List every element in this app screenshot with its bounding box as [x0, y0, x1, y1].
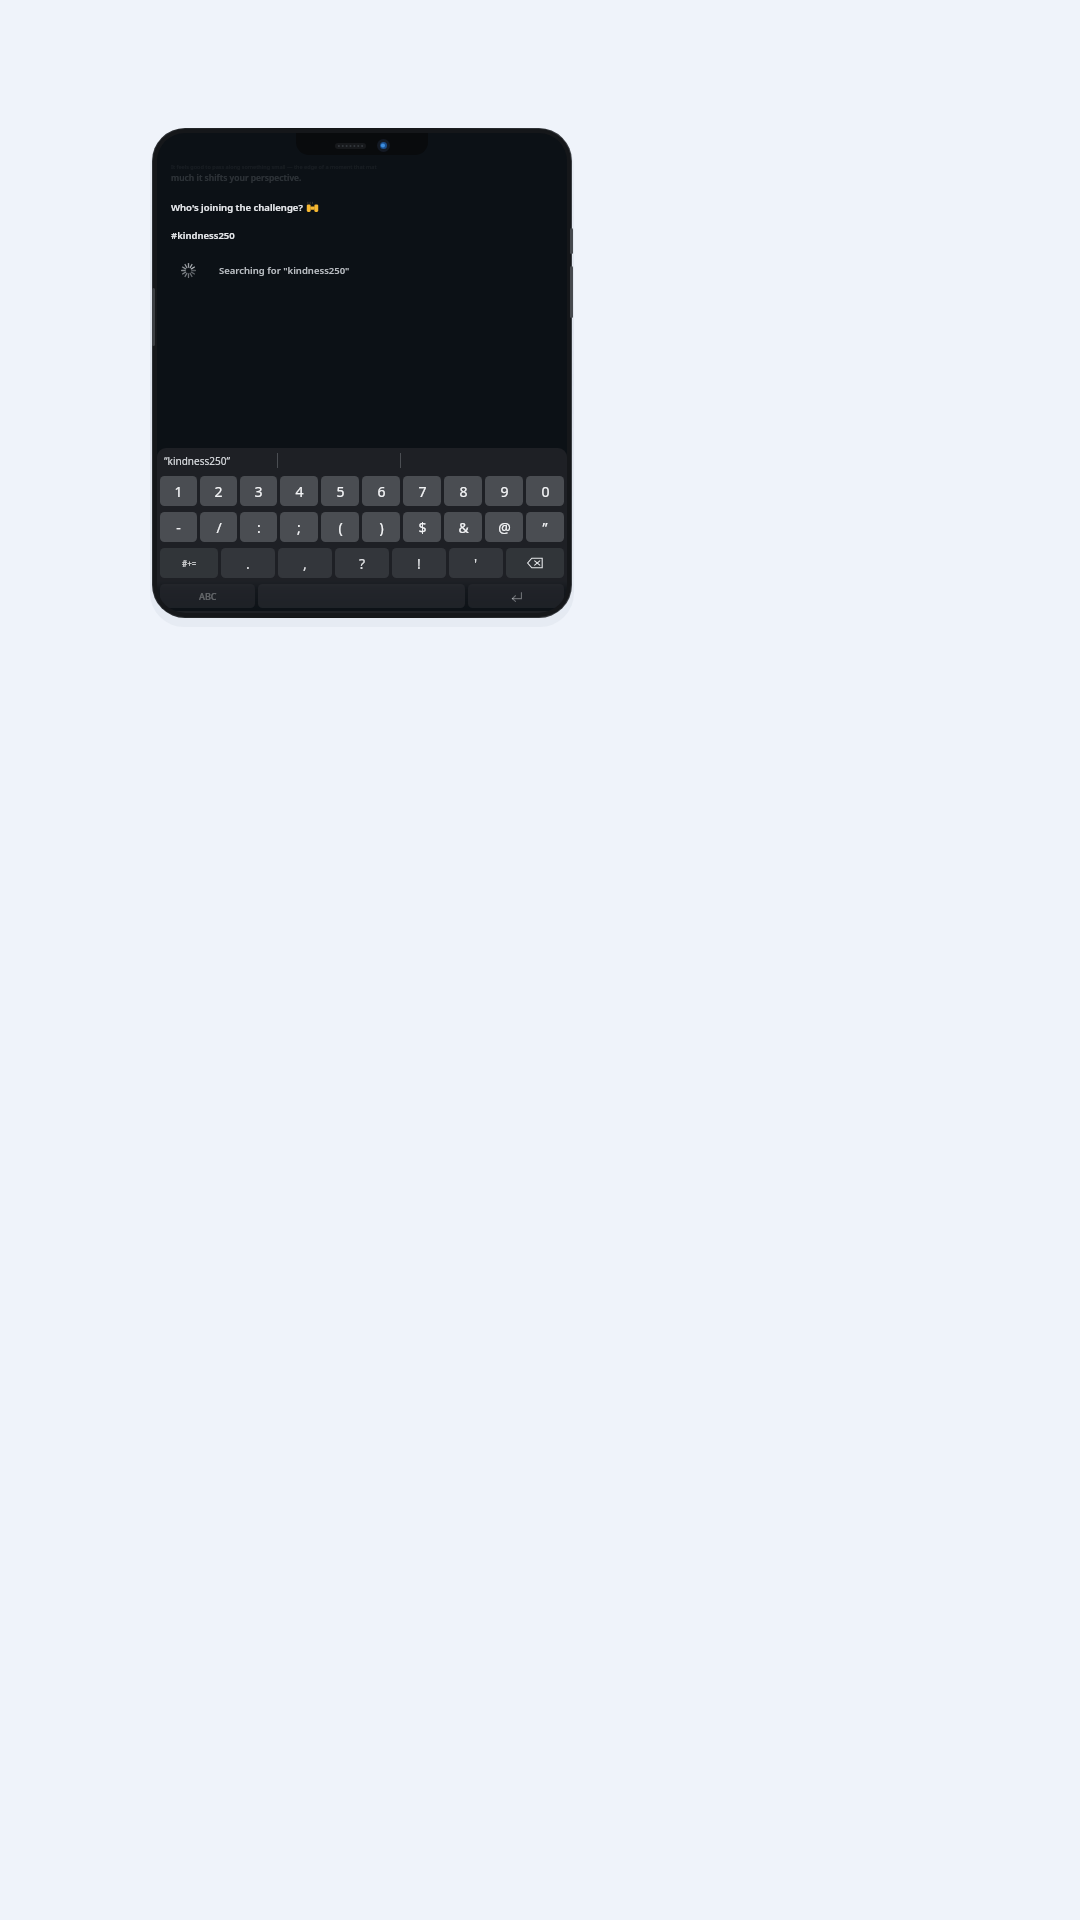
staticText: ABC [199, 590, 217, 602]
staticText: 6 [377, 482, 386, 501]
button[interactable]: 1 [160, 476, 197, 506]
staticText: 2 [214, 482, 223, 501]
staticText: 7 [418, 482, 427, 501]
staticText: , [303, 554, 307, 573]
button[interactable]: 3 [240, 476, 277, 506]
staticText: #kindness250 [171, 229, 235, 242]
button[interactable]: 9 [485, 476, 523, 506]
button[interactable]: ' [449, 548, 503, 578]
staticText: “kindness250” [164, 454, 230, 468]
staticText: ; [297, 518, 301, 537]
button[interactable]: : [240, 512, 277, 542]
button[interactable]: 6 [362, 476, 400, 506]
staticText: 0 [541, 482, 550, 501]
staticText: #+= [182, 558, 197, 569]
button[interactable]: / [200, 512, 237, 542]
staticText: : [257, 518, 261, 537]
button[interactable]: 7 [403, 476, 441, 506]
button[interactable]: ABC [160, 584, 255, 608]
staticText: $ [418, 518, 427, 537]
button[interactable]: Searching for "kindness250" [157, 261, 567, 280]
staticText: 1 [174, 482, 183, 501]
button[interactable]: , [278, 548, 332, 578]
button[interactable]: & [444, 512, 482, 542]
staticText: 8 [459, 482, 468, 501]
staticText: . [246, 554, 250, 573]
staticText: Searching for "kindness250" [219, 264, 350, 277]
staticText: & [458, 518, 469, 537]
staticText: ( [338, 518, 343, 537]
button[interactable]: #+= [160, 548, 218, 578]
staticText: It feels good to pass along something sm… [171, 163, 377, 170]
button[interactable]: 4 [280, 476, 318, 506]
staticText: Who's joining the challenge? [171, 201, 306, 214]
button[interactable]: @ [485, 512, 523, 542]
staticText: ' [474, 554, 478, 573]
staticText: much it shifts your perspective. [171, 172, 302, 184]
button[interactable]: “kindness250” [157, 448, 269, 473]
staticText: / [216, 518, 222, 537]
staticText: ) [379, 518, 384, 537]
staticText: @ [498, 518, 511, 537]
button[interactable]: 5 [321, 476, 359, 506]
button[interactable]: Backspace [506, 548, 564, 578]
button[interactable]: - [160, 512, 197, 542]
button[interactable]: ? [335, 548, 389, 578]
staticText: - [176, 518, 181, 537]
staticText: ” [542, 518, 548, 537]
staticText: 5 [336, 482, 345, 501]
button[interactable]: ) [362, 512, 400, 542]
button[interactable]: ; [280, 512, 318, 542]
button[interactable]: ! [392, 548, 446, 578]
staticText: 3 [254, 482, 263, 501]
button[interactable]: $ [403, 512, 441, 542]
staticText: ? [359, 554, 366, 573]
button[interactable]: 2 [200, 476, 237, 506]
button[interactable]: 0 [526, 476, 564, 506]
staticText: 9 [500, 482, 509, 501]
button[interactable]: ( [321, 512, 359, 542]
staticText: ! [417, 554, 421, 573]
button[interactable]: 8 [444, 476, 482, 506]
staticText: 4 [295, 482, 304, 501]
button[interactable]: Return [468, 584, 564, 608]
button[interactable]: . [221, 548, 275, 578]
button[interactable]: ” [526, 512, 564, 542]
